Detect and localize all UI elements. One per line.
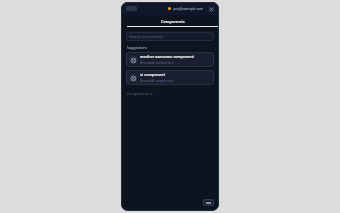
- button[interactable]: Open menu: [203, 199, 214, 206]
- staticText: Reusable component: [140, 60, 174, 65]
- staticText: Reusable component: [140, 78, 174, 83]
- staticText: Search components...: [129, 34, 166, 39]
- staticText: Components: [161, 19, 185, 24]
- staticText: ui component: [140, 72, 165, 77]
- staticText: another awesome component: [140, 54, 195, 59]
- button[interactable]: another awesome component: [126, 52, 214, 67]
- button[interactable]: Components: [127, 19, 219, 28]
- staticText: you@example.com: [173, 6, 204, 11]
- button[interactable]: App logo: [126, 6, 137, 11]
- button[interactable]: Search components...: [126, 32, 214, 41]
- button[interactable]: you@example.com: [167, 6, 205, 11]
- staticText: Suggestions: [127, 45, 148, 50]
- button[interactable]: Close: [208, 6, 214, 12]
- button[interactable]: ui component: [126, 70, 214, 85]
- staticText: Components: 2: [127, 91, 153, 96]
